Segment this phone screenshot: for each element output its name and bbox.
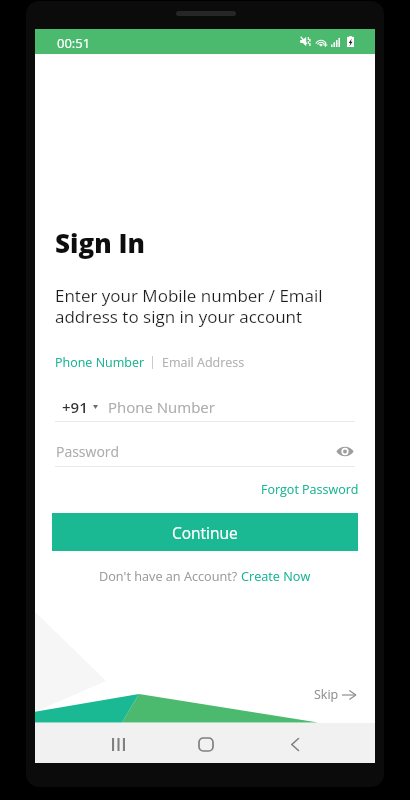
staticText: Password — [56, 442, 120, 461]
staticText: Enter your Mobile number / Email address… — [55, 284, 323, 328]
staticText: +91 — [62, 397, 88, 417]
staticText: Sign In — [55, 225, 145, 260]
staticText: Phone Number — [55, 354, 145, 371]
button[interactable]: Email Address — [162, 351, 245, 374]
staticText: Create Now — [241, 567, 311, 584]
staticText: Continue — [172, 522, 238, 543]
button[interactable]: Skip — [314, 686, 356, 703]
button[interactable]: Show password — [332, 439, 358, 463]
button[interactable]: Recent apps — [98, 724, 138, 764]
button[interactable]: Continue — [52, 513, 358, 551]
button[interactable]: Phone Number — [55, 351, 145, 374]
button[interactable]: Forgot Password — [261, 478, 359, 501]
button[interactable]: Back — [275, 724, 315, 764]
button[interactable]: Home — [186, 724, 226, 764]
button[interactable]: Create Now — [241, 567, 311, 584]
staticText: Phone Number — [108, 397, 215, 417]
staticText: Skip — [314, 686, 339, 703]
staticText: Don't have an Account? — [99, 567, 241, 584]
staticText: Email Address — [162, 354, 245, 371]
staticText: 00:51 — [57, 34, 91, 52]
staticText: Forgot Password — [261, 481, 359, 498]
